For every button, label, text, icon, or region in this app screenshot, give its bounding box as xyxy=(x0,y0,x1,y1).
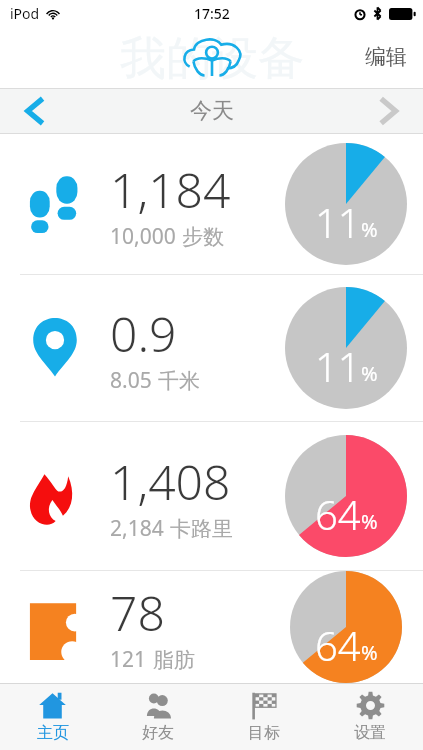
staticText: 11 xyxy=(315,195,361,249)
staticText: 0.9 xyxy=(110,301,177,366)
button[interactable]: Steps xyxy=(0,134,423,274)
staticText: 好友 xyxy=(142,723,174,743)
staticText: 编辑 xyxy=(365,44,407,70)
other: Steps xyxy=(22,171,88,237)
staticText: % xyxy=(361,508,378,535)
button[interactable]: 设置 xyxy=(317,684,423,750)
staticText: 设置 xyxy=(354,723,386,743)
staticText: 2,184 xyxy=(110,514,164,543)
staticText: 121 xyxy=(110,645,147,674)
button[interactable]: Fat xyxy=(0,571,423,683)
staticText: 78 xyxy=(110,580,165,645)
staticText: 步数 xyxy=(182,224,224,250)
button[interactable]: 目标 xyxy=(211,684,317,750)
staticText: 主页 xyxy=(37,723,69,743)
button[interactable]: 好友 xyxy=(105,684,211,750)
button[interactable]: Calories xyxy=(0,422,423,570)
button[interactable]: 主页 xyxy=(0,684,105,750)
staticText: 1,408 xyxy=(110,449,231,514)
staticText: 8.05 xyxy=(110,366,152,395)
staticText: 64 xyxy=(315,618,361,672)
staticText: iPod xyxy=(10,4,40,23)
staticText: 千米 xyxy=(158,368,200,394)
other: Calories xyxy=(22,463,88,529)
staticText: % xyxy=(361,639,378,666)
other: Fat xyxy=(22,594,88,660)
button[interactable]: Next day xyxy=(353,89,423,133)
staticText: 目标 xyxy=(248,723,280,743)
other: Distance xyxy=(22,315,88,381)
staticText: 脂肪 xyxy=(153,647,195,673)
button[interactable]: 编辑 xyxy=(353,36,419,78)
button[interactable]: Distance xyxy=(0,275,423,421)
staticText: 今天 xyxy=(190,97,234,125)
staticText: % xyxy=(361,360,378,387)
button[interactable]: Previous day xyxy=(0,89,70,133)
staticText: 11 xyxy=(315,339,361,393)
staticText: 64 xyxy=(315,487,361,541)
staticText: % xyxy=(361,216,378,243)
staticText: 卡路里 xyxy=(170,516,233,542)
staticText: 我的设备 xyxy=(120,30,304,88)
staticText: 17:52 xyxy=(194,4,230,23)
staticText: 1,184 xyxy=(110,157,231,222)
staticText: 10,000 xyxy=(110,222,176,251)
